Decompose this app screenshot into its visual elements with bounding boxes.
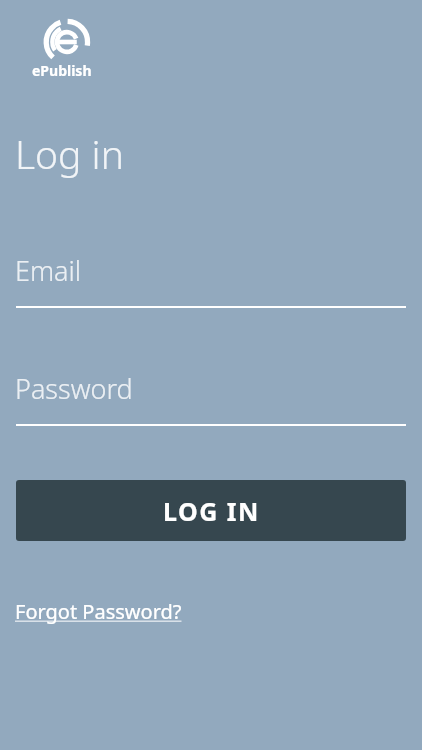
other: ePublish logo <box>44 20 88 64</box>
staticText: Log in <box>15 127 124 180</box>
staticText: ePublish <box>32 61 92 80</box>
button[interactable]: Forgot Password? <box>15 598 182 625</box>
button[interactable]: Password <box>0 370 422 426</box>
button[interactable]: LOG IN <box>16 480 406 541</box>
staticText: Email <box>15 252 82 289</box>
button[interactable]: Email <box>0 252 422 308</box>
staticText: LOG IN <box>163 494 260 528</box>
staticText: Forgot Password? <box>15 598 182 625</box>
staticText: Password <box>15 370 133 407</box>
